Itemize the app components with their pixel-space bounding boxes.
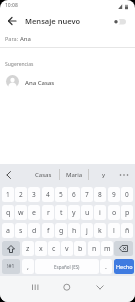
staticText: 6: [72, 190, 76, 199]
staticText: .: [105, 262, 107, 272]
button[interactable]: ,: [22, 259, 34, 274]
staticText: Para:: [5, 35, 19, 42]
button[interactable]: Maria: [60, 164, 89, 185]
button[interactable]: !#1: [2, 259, 20, 274]
button[interactable]: o: [108, 205, 120, 220]
staticText: s: [19, 226, 23, 236]
button[interactable]: 4: [42, 187, 54, 202]
staticText: j: [86, 226, 88, 236]
button[interactable]: 1: [2, 187, 14, 202]
staticText: c: [52, 244, 56, 254]
button[interactable]: 9: [108, 187, 120, 202]
button[interactable]: [2, 241, 20, 256]
staticText: h: [72, 226, 77, 236]
button[interactable]: 5: [55, 187, 67, 202]
button[interactable]: g: [55, 223, 67, 238]
staticText: Casas: [35, 171, 52, 179]
button[interactable]: c: [48, 241, 60, 256]
button[interactable]: x: [35, 241, 47, 256]
button[interactable]: z: [22, 241, 34, 256]
staticText: 1: [6, 190, 10, 199]
staticText: g: [59, 226, 64, 236]
staticText: a: [6, 226, 10, 236]
button[interactable]: [6, 171, 12, 179]
staticText: q: [6, 208, 11, 218]
staticText: x: [39, 244, 43, 254]
staticText: Español (ES): [54, 264, 80, 270]
staticText: Ana: [20, 35, 31, 43]
button[interactable]: Casas: [28, 164, 58, 185]
staticText: o: [112, 208, 117, 218]
button[interactable]: k: [94, 223, 106, 238]
staticText: k: [98, 226, 102, 236]
button[interactable]: w: [15, 205, 27, 220]
staticText: t: [60, 208, 63, 218]
staticText: u: [85, 208, 90, 218]
staticText: 9: [112, 190, 116, 199]
button[interactable]: q: [2, 205, 14, 220]
staticText: n: [92, 244, 97, 254]
staticText: r: [47, 208, 50, 218]
button[interactable]: h: [68, 223, 80, 238]
button[interactable]: 7: [81, 187, 93, 202]
button[interactable]: 2: [15, 187, 27, 202]
button[interactable]: [63, 284, 71, 291]
staticText: 8: [98, 190, 102, 199]
button[interactable]: Español (ES): [35, 259, 99, 274]
button[interactable]: v: [61, 241, 73, 256]
button[interactable]: Hecho: [114, 259, 134, 274]
button[interactable]: [96, 285, 104, 291]
staticText: b: [78, 244, 83, 254]
staticText: 7: [85, 190, 89, 199]
button[interactable]: l: [108, 223, 120, 238]
button[interactable]: 6: [68, 187, 80, 202]
staticText: ,: [27, 262, 29, 272]
button[interactable]: m: [101, 241, 113, 256]
button[interactable]: 8: [94, 187, 106, 202]
button[interactable]: y: [92, 164, 116, 185]
button[interactable]: .: [100, 259, 112, 274]
staticText: z: [26, 244, 30, 254]
button[interactable]: e: [28, 205, 40, 220]
button[interactable]: [8, 17, 16, 25]
button[interactable]: i: [94, 205, 106, 220]
button[interactable]: Ana Casas: [0, 75, 135, 99]
staticText: m: [104, 244, 111, 254]
staticText: 3: [32, 190, 36, 199]
staticText: v: [65, 244, 69, 254]
staticText: 10:08: [5, 2, 18, 9]
button[interactable]: n: [88, 241, 100, 256]
button[interactable]: [32, 284, 39, 291]
button[interactable]: Para:: [0, 31, 135, 47]
staticText: 2: [19, 190, 23, 199]
staticText: 0: [125, 190, 129, 199]
staticText: 5: [59, 190, 63, 199]
staticText: Maria: [66, 171, 83, 179]
staticText: e: [32, 208, 36, 218]
button[interactable]: s: [15, 223, 27, 238]
staticText: y: [72, 208, 76, 218]
button[interactable]: b: [74, 241, 86, 256]
button[interactable]: j: [81, 223, 93, 238]
staticText: p: [125, 208, 130, 218]
button[interactable]: r: [42, 205, 54, 220]
button[interactable]: [114, 241, 133, 256]
staticText: d: [32, 226, 37, 236]
button[interactable]: u: [81, 205, 93, 220]
button[interactable]: 3: [28, 187, 40, 202]
button[interactable]: a: [2, 223, 14, 238]
button[interactable]: y: [68, 205, 80, 220]
staticText: w: [18, 208, 24, 218]
button[interactable]: [119, 171, 129, 179]
button[interactable]: f: [42, 223, 54, 238]
staticText: 4: [46, 190, 50, 199]
button[interactable]: p: [121, 205, 133, 220]
button[interactable]: ñ: [121, 223, 133, 238]
button[interactable]: [112, 18, 127, 25]
staticText: Sugerencias: [5, 61, 34, 68]
button[interactable]: d: [28, 223, 40, 238]
staticText: f: [47, 226, 50, 236]
staticText: y: [102, 171, 106, 179]
button[interactable]: t: [55, 205, 67, 220]
button[interactable]: 0: [121, 187, 133, 202]
